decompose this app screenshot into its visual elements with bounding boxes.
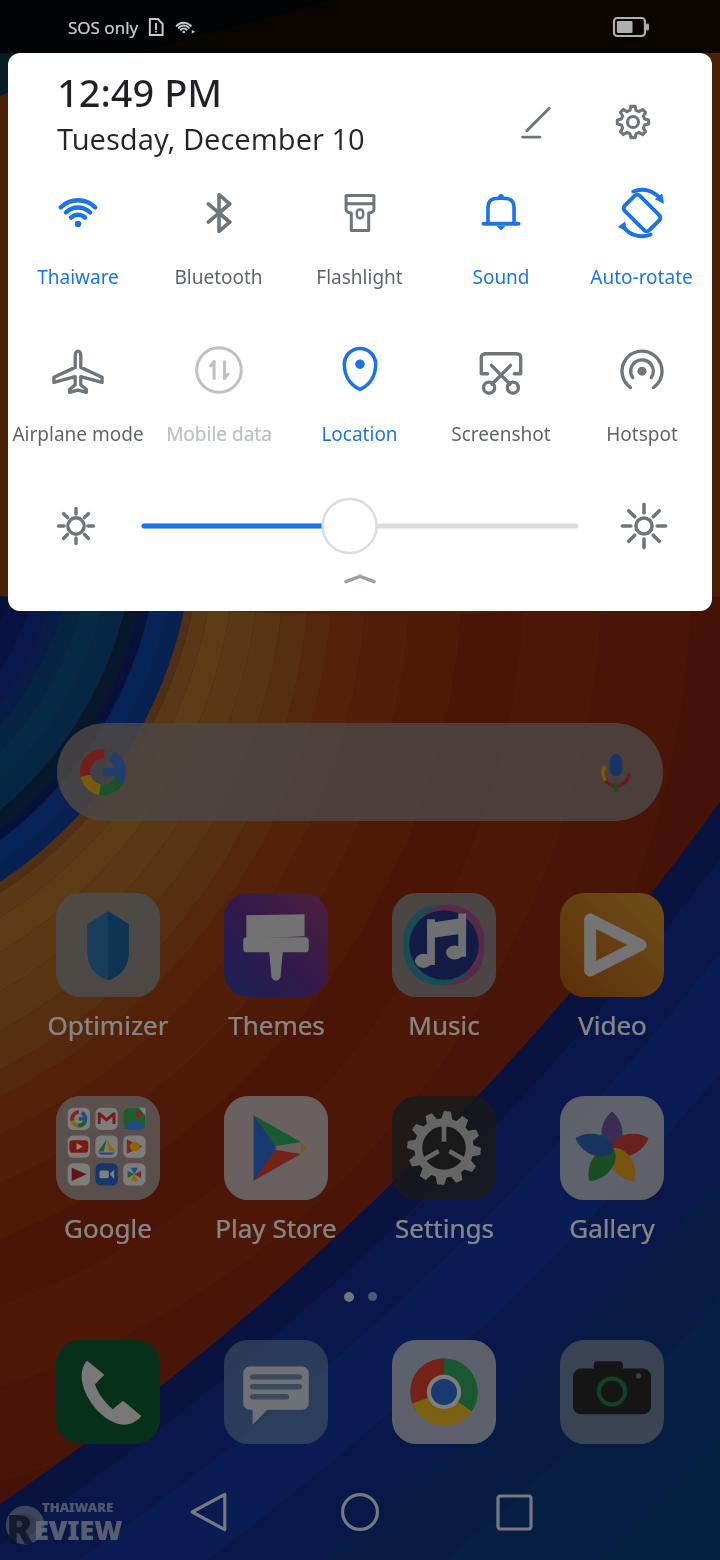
staticText: Google [64, 1210, 152, 1245]
staticText: 12:49 PM [57, 66, 223, 118]
staticText: Video [578, 1007, 647, 1042]
button[interactable]: Video [528, 893, 696, 1042]
staticText: Gallery [569, 1210, 655, 1245]
button[interactable]: Sound [430, 184, 571, 290]
button[interactable]: Settings [360, 1096, 528, 1245]
staticText: Location [321, 421, 398, 447]
button[interactable]: Brightness [144, 496, 576, 556]
staticText: Themes [228, 1007, 325, 1042]
staticText: Auto-rotate [590, 264, 693, 290]
staticText: Bluetooth [174, 264, 263, 290]
button[interactable]: Phone [56, 1340, 160, 1444]
staticText: R [6, 1501, 34, 1553]
button[interactable]: Edit [508, 93, 566, 151]
button[interactable]: Flashlight [289, 184, 430, 290]
staticText: Play Store [215, 1210, 337, 1245]
button[interactable]: Home [319, 1471, 401, 1553]
button[interactable]: Google [24, 1096, 192, 1245]
staticText: Flashlight [316, 264, 403, 290]
button[interactable]: Increase brightness [576, 496, 712, 556]
button[interactable]: Settings [604, 93, 662, 151]
button[interactable]: Mobile data [148, 341, 289, 447]
button[interactable]: Optimizer [24, 893, 192, 1042]
button[interactable]: Gallery [528, 1096, 696, 1245]
staticText: Mobile data [166, 421, 272, 447]
button[interactable]: Play Store [192, 1096, 360, 1245]
staticText: Tuesday, December 10 [57, 119, 365, 158]
button[interactable]: Collapse [320, 559, 400, 599]
button[interactable]: Thaiware [8, 184, 148, 290]
staticText: THAIWARE [42, 1498, 114, 1516]
button[interactable]: Airplane mode [8, 341, 148, 447]
staticText: Settings [395, 1210, 494, 1245]
staticText: Hotspot [606, 421, 678, 447]
button[interactable]: Messages [224, 1340, 328, 1444]
staticText: Screenshot [451, 421, 551, 447]
button[interactable]: Recents [473, 1471, 555, 1553]
button[interactable]: Location [289, 341, 430, 447]
button[interactable]: Hotspot [571, 341, 712, 447]
staticText: Airplane mode [12, 421, 144, 447]
button[interactable]: Back [167, 1471, 249, 1553]
staticText: Thaiware [37, 264, 119, 290]
button[interactable]: Bluetooth [148, 184, 289, 290]
staticText: Sound [472, 264, 530, 290]
staticText: Optimizer [47, 1007, 169, 1042]
button[interactable]: Search [57, 723, 663, 821]
button[interactable]: Music [360, 893, 528, 1042]
staticText: SOS only [68, 16, 139, 39]
button[interactable]: Camera [560, 1340, 664, 1444]
staticText: Music [408, 1007, 480, 1042]
button[interactable]: Screenshot [430, 341, 571, 447]
button[interactable]: Themes [192, 893, 360, 1042]
button[interactable]: Auto-rotate [571, 184, 712, 290]
staticText: EVIEW [34, 1511, 123, 1548]
button[interactable]: Decrease brightness [8, 496, 144, 556]
button[interactable]: Chrome [392, 1340, 496, 1444]
